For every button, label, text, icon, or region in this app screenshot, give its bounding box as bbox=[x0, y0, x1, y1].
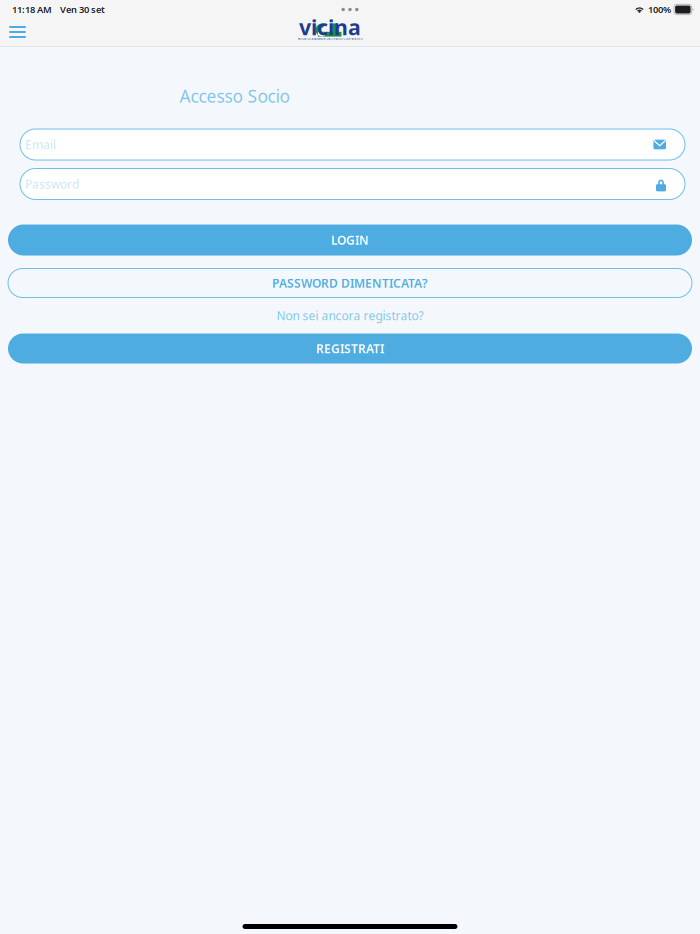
staticText: MUTUA DI ASSISTENZA DEL CREDITO COOPERAT… bbox=[297, 37, 362, 40]
button[interactable]: LOGIN bbox=[8, 224, 692, 255]
button[interactable]: PASSWORD DIMENTICATA? bbox=[8, 268, 692, 297]
button[interactable]: Non sei ancora registrato? bbox=[8, 304, 692, 326]
staticText: Non sei ancora registrato? bbox=[276, 307, 423, 323]
staticText: vicina bbox=[299, 13, 361, 41]
staticText: REGISTRATI bbox=[316, 340, 384, 356]
staticText: 100% bbox=[648, 3, 671, 16]
staticText: Password bbox=[25, 176, 79, 192]
staticText: Accesso Socio bbox=[179, 84, 289, 107]
button[interactable]: REGISTRATI bbox=[8, 333, 692, 363]
staticText: Ven 30 set bbox=[60, 3, 105, 16]
button[interactable]: Menu bbox=[0, 19, 35, 45]
staticText: 11:18 AM bbox=[12, 3, 52, 16]
staticText: PASSWORD DIMENTICATA? bbox=[272, 275, 428, 291]
staticText: LOGIN bbox=[331, 232, 369, 248]
staticText: Email bbox=[25, 136, 56, 152]
